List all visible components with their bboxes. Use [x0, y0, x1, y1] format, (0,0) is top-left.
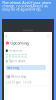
staticText: 18	[6, 74, 10, 79]
button[interactable]: Back	[6, 34, 9, 38]
staticText: ‹	[6, 32, 8, 40]
staticText: Plan ahead. And if your plans	[2, 0, 51, 5]
staticText: Upcoming	[10, 40, 28, 46]
staticText: Tomorrow	[9, 49, 22, 52]
staticText: Expert advice	[9, 60, 26, 63]
button[interactable]: Account	[47, 34, 50, 38]
staticText: easy as drag and drop.	[2, 6, 41, 12]
staticText: change, re-scheduling is as	[2, 3, 48, 8]
button[interactable]: Meeting	[6, 65, 46, 70]
staticText: Meeting	[7, 66, 19, 69]
staticText: Client Sync 10:00	[6, 81, 32, 84]
staticText: Wednesday	[11, 75, 26, 78]
